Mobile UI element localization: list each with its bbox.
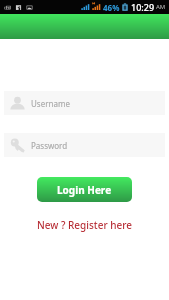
staticText: AM: [156, 3, 166, 11]
other: Screenshot: [26, 4, 33, 11]
button[interactable]: Login Here: [37, 177, 132, 202]
staticText: Login Here: [57, 183, 112, 197]
button[interactable]: Username: [4, 91, 165, 115]
other: Signal: [81, 2, 89, 12]
other: Mobile data: [92, 2, 100, 12]
button[interactable]: Password: [4, 133, 165, 157]
staticText: Password: [31, 140, 68, 151]
other: Facebook: [15, 4, 22, 11]
staticText: Username: [31, 98, 70, 109]
staticText: 10:29: [131, 1, 155, 13]
button[interactable]: New ? Register here: [31, 215, 139, 235]
other: Notification: [4, 4, 11, 11]
other: Battery: [122, 2, 128, 12]
staticText: 46%: [103, 2, 120, 13]
staticText: New ? Register here: [37, 218, 133, 232]
